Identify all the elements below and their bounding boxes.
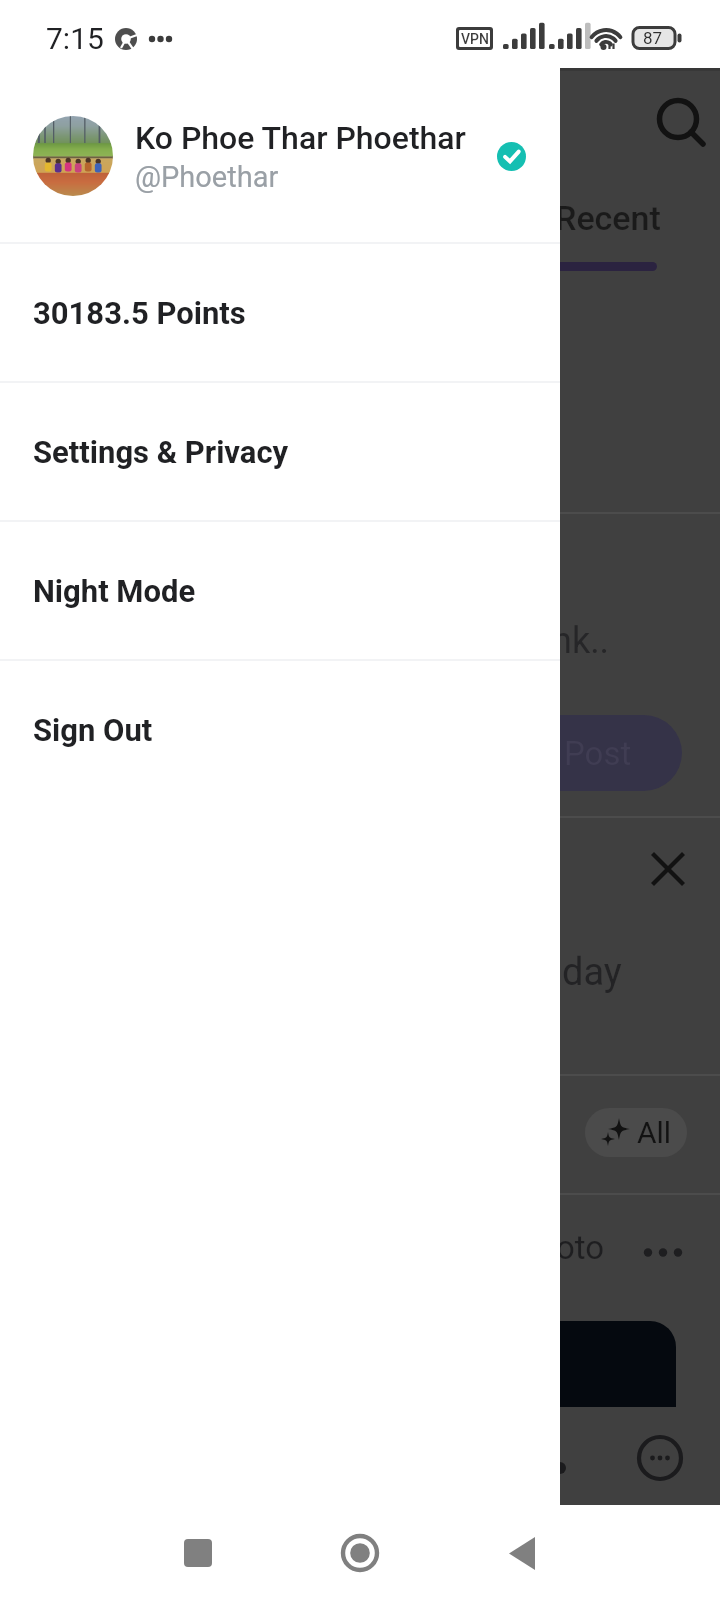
staticText: Post	[564, 734, 632, 773]
staticText: nk..	[552, 620, 610, 662]
button[interactable]: Ko Phoe Thar Phoethar	[0, 68, 560, 242]
button[interactable]: Home	[324, 1517, 396, 1589]
button[interactable]: More options	[644, 1243, 684, 1283]
button[interactable]: Back	[486, 1517, 558, 1589]
staticText: Ko Phoe Thar Phoethar	[135, 119, 466, 157]
staticText: @Phoethar	[135, 160, 279, 194]
staticText: 7:15	[46, 21, 104, 56]
staticText: oto	[556, 1228, 605, 1267]
button[interactable]: All	[585, 1108, 687, 1157]
staticText: VPN	[461, 31, 489, 47]
button[interactable]: Night Mode	[0, 522, 560, 659]
button[interactable]: More	[636, 1434, 684, 1482]
button[interactable]: Sign Out	[0, 661, 560, 798]
staticText: 87	[643, 28, 663, 48]
button[interactable]: Settings & Privacy	[0, 383, 560, 520]
staticText: Recent	[555, 198, 661, 238]
staticText: 30183.5 Points	[33, 295, 246, 331]
button[interactable]: Close	[653, 854, 683, 884]
button[interactable]: Recents	[162, 1517, 234, 1589]
button[interactable]: Search	[656, 97, 708, 149]
button[interactable]: 30183.5 Points	[0, 244, 560, 381]
button[interactable]: Post	[522, 715, 682, 791]
staticText: All	[637, 1115, 672, 1150]
staticText: Sign Out	[33, 712, 153, 748]
staticText: Settings & Privacy	[33, 434, 289, 470]
staticText: Night Mode	[33, 573, 196, 609]
staticText: day	[562, 950, 622, 995]
